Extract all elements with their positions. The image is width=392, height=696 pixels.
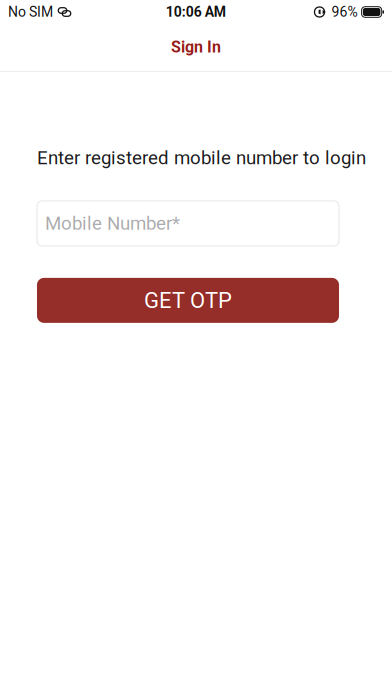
staticText: Enter registered mobile number to login — [37, 147, 366, 169]
button[interactable]: GET OTP — [37, 278, 339, 323]
staticText: 10:06 AM — [166, 4, 226, 20]
staticText: GET OTP — [144, 287, 232, 313]
button[interactable]: Mobile Number — [37, 201, 339, 246]
staticText: 96% — [332, 4, 358, 20]
staticText: No SIM — [8, 4, 53, 20]
staticText: Sign In — [171, 38, 221, 56]
staticText: Mobile Number* — [45, 212, 180, 234]
